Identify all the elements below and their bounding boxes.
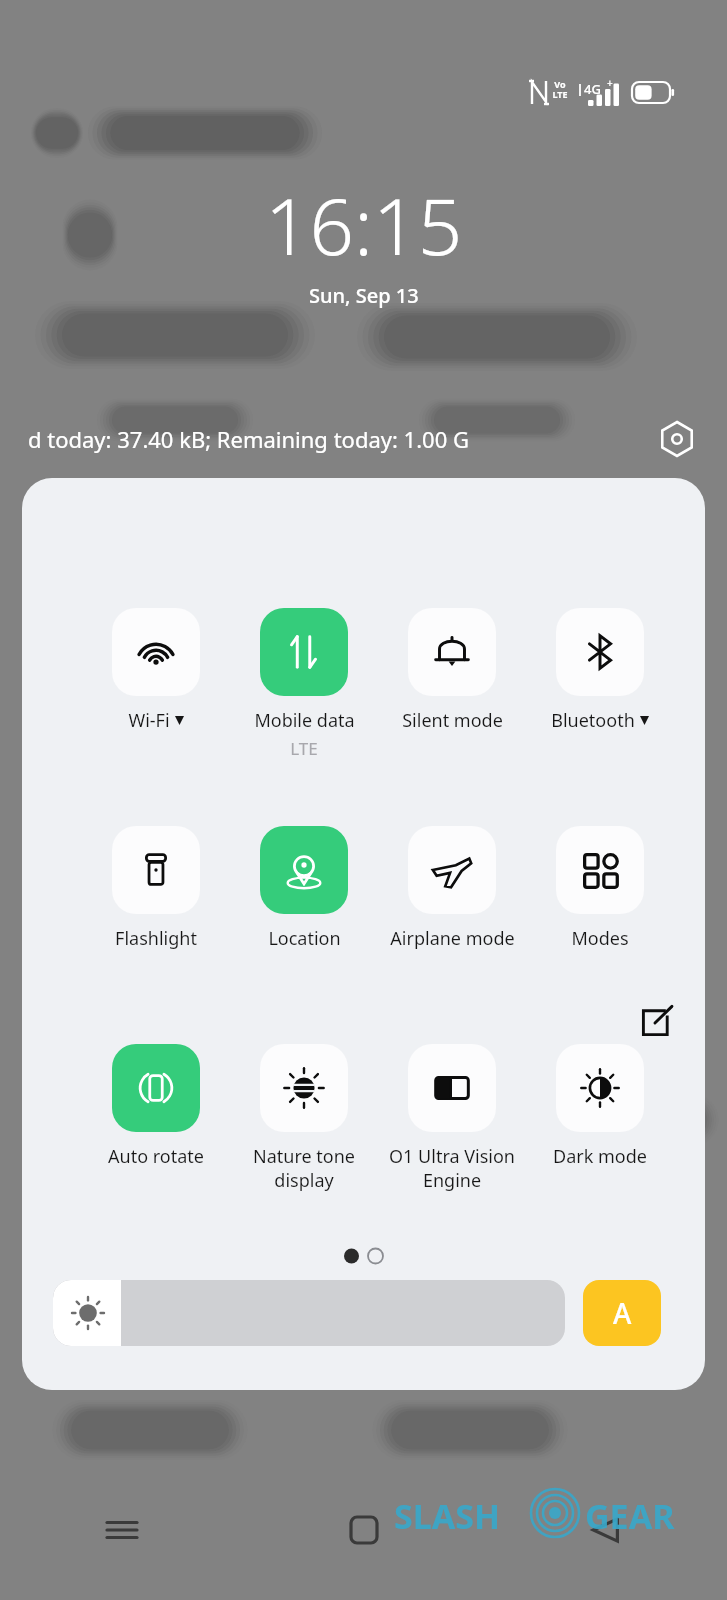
- staticText: Dark mode: [553, 1144, 647, 1169]
- staticText: A: [613, 1294, 632, 1332]
- staticText: Nature tone display: [253, 1144, 355, 1192]
- button[interactable]: Data settings: [653, 415, 701, 463]
- button[interactable]: Recents: [0, 1495, 243, 1565]
- staticText: LTE: [290, 737, 318, 760]
- staticText: 16:15: [265, 172, 463, 278]
- staticText: GEAR: [585, 1493, 675, 1539]
- button[interactable]: Modes: [534, 826, 666, 951]
- button[interactable]: Wi-Fi: [90, 608, 222, 733]
- button[interactable]: Home: [243, 1495, 485, 1565]
- button[interactable]: Silent mode: [386, 608, 518, 733]
- staticText: Airplane mode: [390, 926, 515, 951]
- button[interactable]: Nature tone display: [238, 1044, 370, 1192]
- staticText: Bluetooth: [551, 708, 635, 733]
- button[interactable]: Mobile data: [238, 608, 370, 760]
- button[interactable]: Edit quick settings: [626, 990, 688, 1052]
- button[interactable]: Dark mode: [534, 1044, 666, 1169]
- button[interactable]: Airplane mode: [386, 826, 518, 951]
- button[interactable]: O1 Ultra Vision Engine: [386, 1044, 518, 1192]
- staticText: d today: 37.40 kB; Remaining today: 1.00…: [28, 424, 653, 454]
- button[interactable]: Location: [238, 826, 370, 951]
- staticText: O1 Ultra Vision Engine: [389, 1144, 515, 1192]
- staticText: Sun, Sep 13: [309, 282, 419, 309]
- button[interactable]: A: [583, 1280, 661, 1346]
- staticText: Flashlight: [115, 926, 197, 951]
- button[interactable]: Auto rotate: [90, 1044, 222, 1169]
- button[interactable]: Back: [485, 1495, 727, 1565]
- button[interactable]: Flashlight: [90, 826, 222, 951]
- staticText: 4G: [584, 80, 601, 98]
- staticText: Vo LTE: [552, 78, 568, 100]
- staticText: Mobile data: [254, 708, 355, 733]
- button[interactable]: Brightness: [53, 1280, 565, 1346]
- staticText: Silent mode: [402, 708, 503, 733]
- button[interactable]: Bluetooth: [534, 608, 666, 733]
- staticText: SLASH: [394, 1493, 501, 1539]
- staticText: +: [607, 76, 613, 90]
- staticText: Wi-Fi: [128, 708, 170, 733]
- staticText: Location: [268, 926, 341, 951]
- staticText: Modes: [571, 926, 629, 951]
- staticText: Auto rotate: [108, 1144, 204, 1169]
